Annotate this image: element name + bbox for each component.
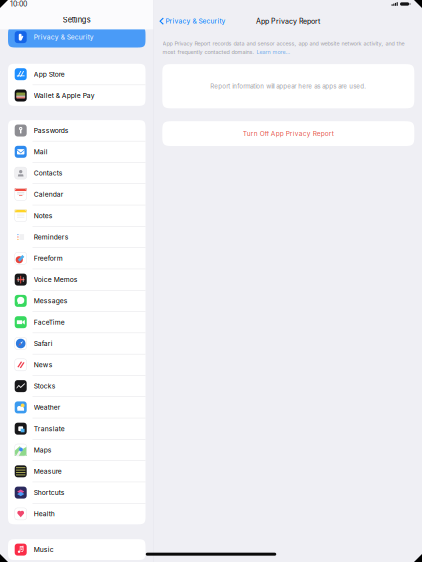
staticText: Learn more… [257,49,291,55]
staticText: Measure [34,467,62,475]
staticText: Safari [34,339,53,347]
button[interactable]: Freeform [8,248,145,269]
button[interactable]: Music [8,539,145,560]
staticText: App Privacy Report [256,17,320,25]
staticText: App Privacy Report records data and sens… [163,40,405,47]
staticText: Report information will appear here as a… [210,82,366,90]
staticText: Passwords [34,126,69,134]
button[interactable]: Learn more… [257,49,291,55]
staticText: Privacy & Security [34,33,94,41]
button[interactable]: Passwords [8,120,145,141]
button[interactable]: Mail [8,141,145,162]
staticText: Music [34,545,54,554]
button[interactable]: Translate [8,418,145,439]
staticText: Reminders [34,233,69,241]
button[interactable]: Maps [8,440,145,460]
button[interactable]: FaceTime [8,312,145,333]
button[interactable]: Privacy & Security [8,27,145,47]
staticText: FaceTime [34,318,65,326]
staticText: Maps [34,446,52,454]
staticText: Voice Memos [34,275,78,284]
button[interactable]: Measure [8,461,145,482]
staticText: Mail [34,148,48,156]
button[interactable]: Stocks [8,376,145,396]
button[interactable]: Calendar [8,184,145,205]
button[interactable]: Safari [8,333,145,354]
staticText: Health [34,510,55,518]
staticText: App Store [34,70,65,78]
staticText: Privacy & Security [166,17,226,25]
staticText: Wallet & Apple Pay [34,91,95,99]
button[interactable]: News [8,354,145,375]
button[interactable]: Shortcuts [8,482,145,503]
staticText: Shortcuts [34,488,65,497]
button[interactable]: Health [8,503,145,524]
button[interactable]: Contacts [8,163,145,183]
staticText: Translate [34,425,65,433]
staticText: Turn Off App Privacy Report [243,130,334,138]
staticText: Weather [34,403,61,411]
staticText: Stocks [34,382,56,390]
button[interactable]: Weather [8,397,145,418]
button[interactable]: Turn Off App Privacy Report [154,121,422,146]
button[interactable]: App Store [8,64,145,85]
staticText: Settings [63,15,91,24]
button[interactable]: Privacy & Security [154,1,230,29]
staticText: most frequently contacted domains. [163,49,257,55]
staticText: News [34,361,53,369]
staticText: Contacts [34,169,63,177]
button[interactable]: Notes [8,205,145,226]
staticText: Messages [34,297,68,305]
staticText: Freeform [34,254,63,262]
button[interactable]: Messages [8,290,145,311]
button[interactable]: Wallet & Apple Pay [8,85,145,106]
button[interactable]: Reminders [8,227,145,247]
staticText: 10:00 [10,0,27,8]
staticText: Notes [34,212,53,220]
staticText: Calendar [34,190,64,198]
button[interactable]: Voice Memos [8,269,145,290]
